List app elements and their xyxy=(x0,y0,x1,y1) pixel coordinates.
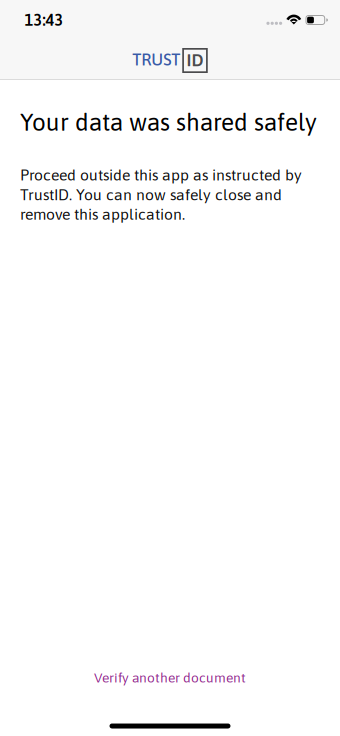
staticText: TRUST xyxy=(132,50,180,69)
staticText: ID xyxy=(186,50,203,70)
staticText: 13:43 xyxy=(24,11,63,29)
staticText: Verify another document xyxy=(94,670,246,685)
staticText: Your data was shared safely xyxy=(20,108,317,136)
staticText: Proceed outside this app as instructed b… xyxy=(20,166,302,223)
button[interactable]: Verify another document xyxy=(20,658,320,697)
